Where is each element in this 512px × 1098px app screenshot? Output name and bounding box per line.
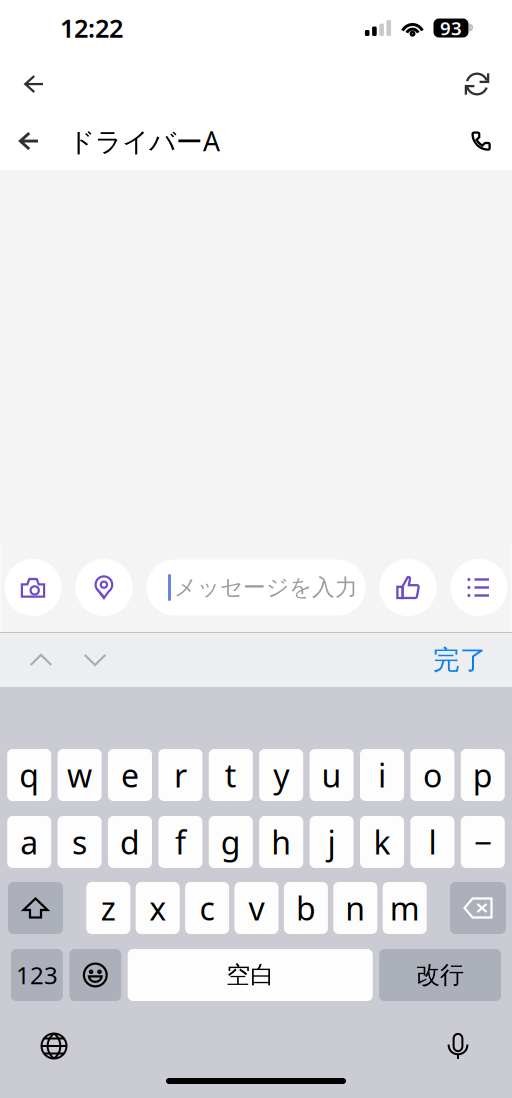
button[interactable]: d xyxy=(108,816,152,868)
button[interactable]: x xyxy=(136,882,180,934)
button[interactable]: e xyxy=(108,749,152,801)
staticText: q xyxy=(19,754,39,796)
button[interactable]: j xyxy=(310,816,354,868)
staticText: l xyxy=(428,821,436,863)
button[interactable]: 完了 xyxy=(429,636,491,684)
staticText: 空白 xyxy=(226,960,274,990)
staticText: w xyxy=(67,754,92,796)
staticText: b xyxy=(296,887,316,929)
button[interactable]: v xyxy=(234,882,278,934)
button[interactable]: Switch keyboard xyxy=(32,1024,76,1068)
staticText: v xyxy=(248,887,264,929)
staticText: e xyxy=(121,754,139,796)
staticText: p xyxy=(473,754,493,796)
button[interactable]: g xyxy=(209,816,253,868)
staticText: z xyxy=(101,887,116,929)
button[interactable]: s xyxy=(58,816,102,868)
staticText: o xyxy=(423,754,442,796)
button[interactable]: Camera xyxy=(4,559,61,616)
button[interactable]: r xyxy=(158,749,202,801)
button[interactable]: Like xyxy=(379,559,436,616)
button[interactable]: Back xyxy=(7,119,51,163)
button[interactable]: Previous field xyxy=(18,638,64,682)
button[interactable]: Back xyxy=(12,62,56,106)
button[interactable]: w xyxy=(58,749,102,801)
staticText: 完了 xyxy=(433,644,487,676)
staticText: c xyxy=(200,887,215,929)
button[interactable]: u xyxy=(310,749,354,801)
staticText: d xyxy=(120,821,140,863)
button[interactable]: h xyxy=(259,816,303,868)
staticText: 93 xyxy=(440,16,462,40)
staticText: u xyxy=(322,754,342,796)
button[interactable]: Call xyxy=(459,119,503,163)
staticText: j xyxy=(328,821,336,863)
button[interactable]: − xyxy=(461,816,505,868)
button[interactable]: Delete xyxy=(450,882,506,934)
button[interactable]: Shift xyxy=(8,882,63,934)
button[interactable]: t xyxy=(209,749,253,801)
button[interactable]: 空白 xyxy=(128,949,373,1001)
button[interactable]: y xyxy=(259,749,303,801)
staticText: m xyxy=(390,887,420,929)
button[interactable]: p xyxy=(461,749,505,801)
staticText: 12:22 xyxy=(60,11,123,45)
button[interactable]: Refresh xyxy=(455,62,499,106)
button[interactable]: k xyxy=(360,816,404,868)
button[interactable]: o xyxy=(410,749,454,801)
staticText: n xyxy=(345,887,365,929)
button[interactable]: c xyxy=(185,882,229,934)
staticText: x xyxy=(149,887,166,929)
staticText: a xyxy=(20,821,38,863)
button[interactable]: n xyxy=(333,882,377,934)
staticText: − xyxy=(474,821,492,863)
staticText: k xyxy=(373,821,390,863)
staticText: g xyxy=(221,821,241,863)
button[interactable]: Dictate xyxy=(436,1024,480,1068)
button[interactable]: m xyxy=(383,882,427,934)
staticText: h xyxy=(271,821,291,863)
staticText: 改行 xyxy=(416,960,464,990)
button[interactable]: a xyxy=(7,816,51,868)
button[interactable]: z xyxy=(86,882,130,934)
staticText: 123 xyxy=(16,959,58,991)
button[interactable]: b xyxy=(284,882,328,934)
staticText: メッセージを入力 xyxy=(174,574,358,601)
button[interactable]: l xyxy=(410,816,454,868)
button[interactable]: 123 xyxy=(11,949,63,1001)
button[interactable]: Templates xyxy=(450,559,507,616)
button[interactable]: Next field xyxy=(72,638,118,682)
staticText: y xyxy=(273,754,289,796)
button[interactable]: 改行 xyxy=(379,949,501,1001)
staticText: t xyxy=(225,754,237,796)
staticText: s xyxy=(72,821,87,863)
staticText: ドライバーA xyxy=(68,123,220,159)
staticText: f xyxy=(175,821,186,863)
staticText: i xyxy=(378,754,386,796)
staticText: r xyxy=(174,754,187,796)
button[interactable]: Emoji xyxy=(69,949,121,1001)
button[interactable]: Location xyxy=(75,559,132,616)
button[interactable]: f xyxy=(158,816,202,868)
button[interactable]: q xyxy=(7,749,51,801)
button[interactable]: i xyxy=(360,749,404,801)
